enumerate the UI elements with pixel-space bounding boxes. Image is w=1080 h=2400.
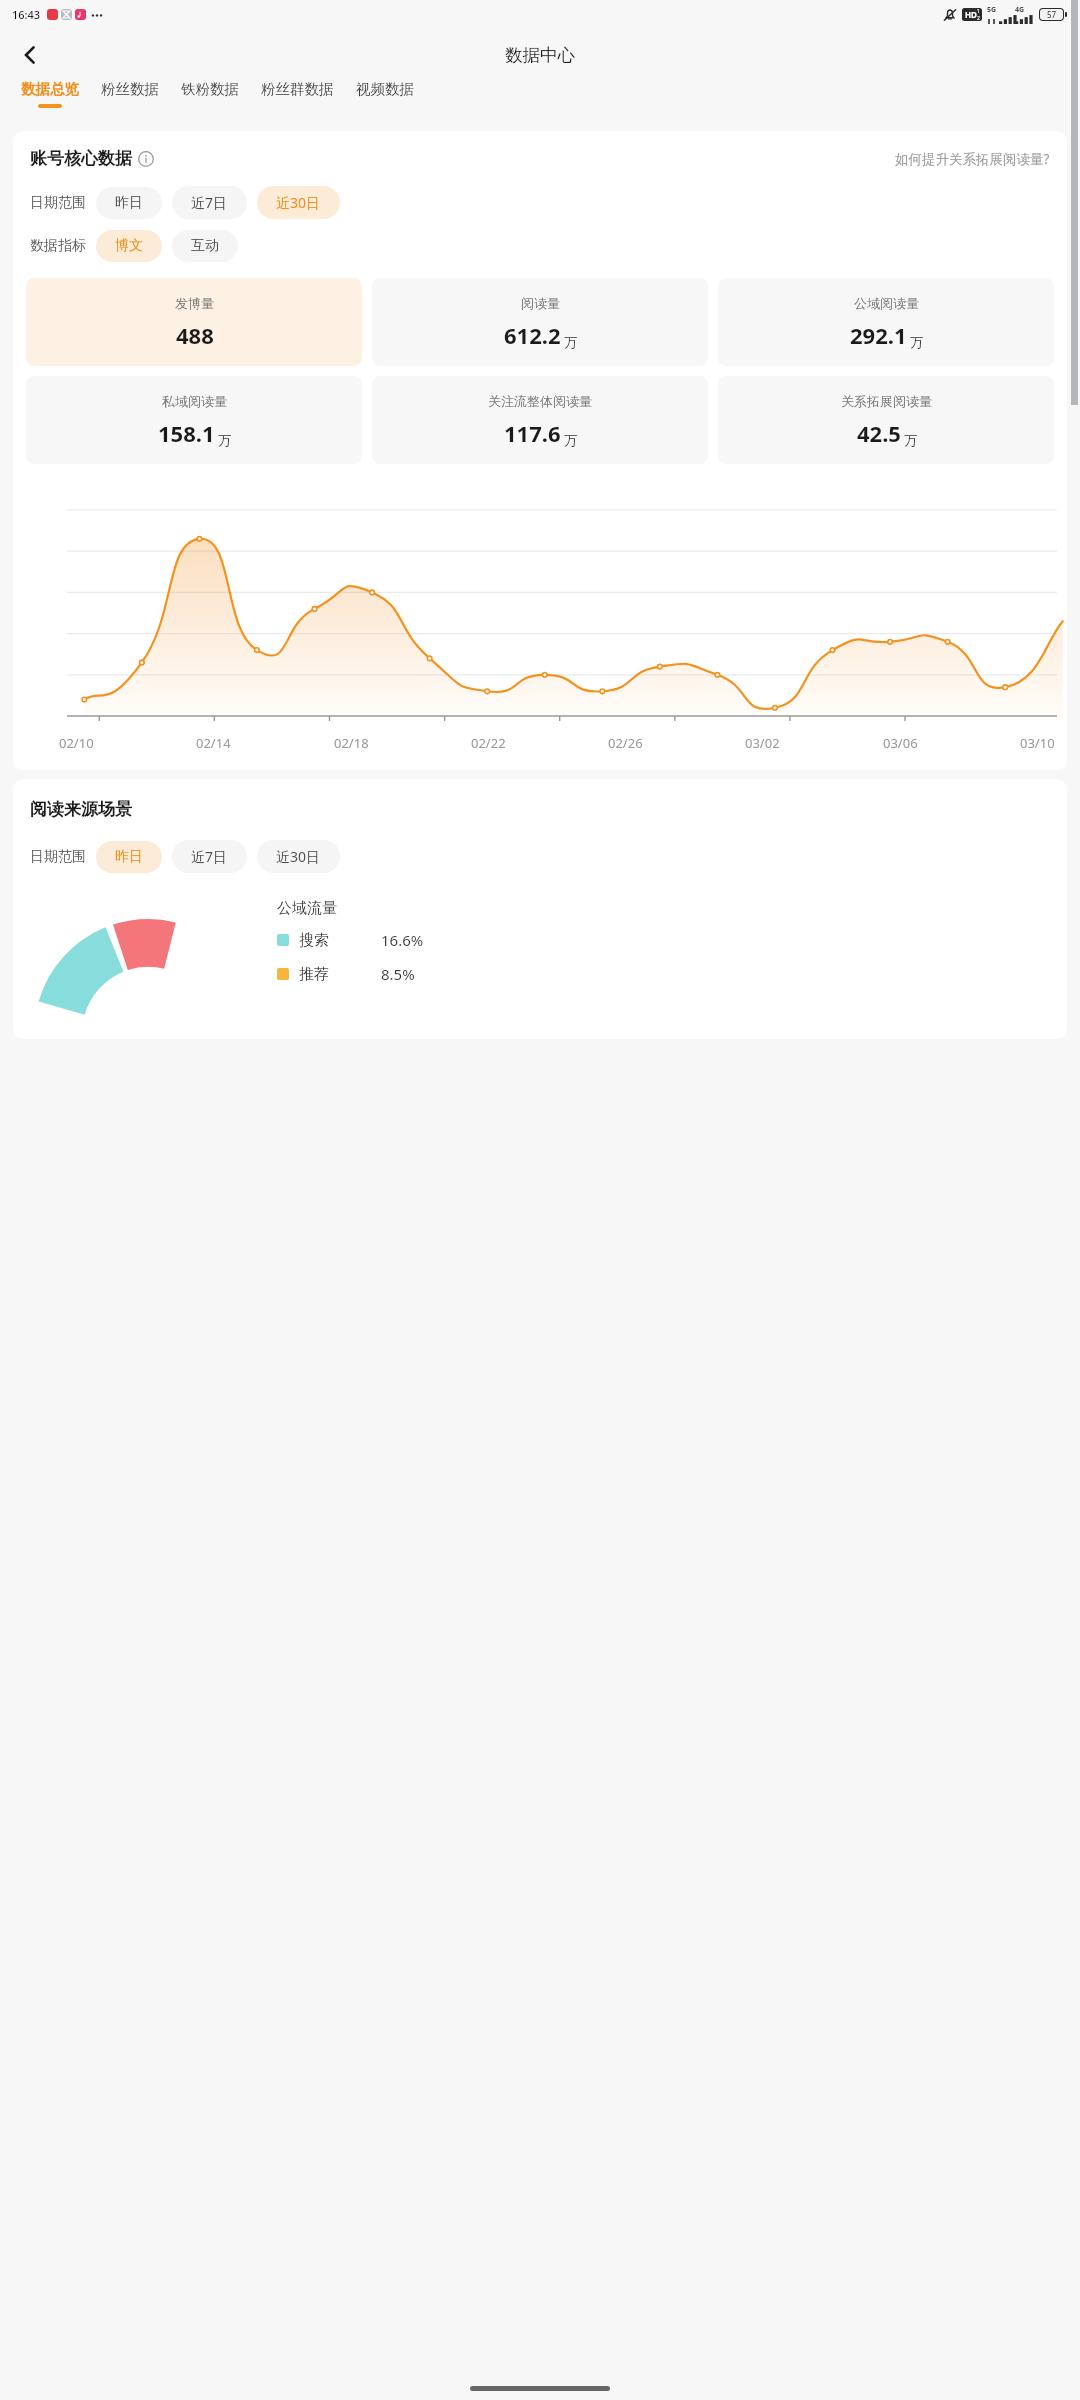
staticText: 公域流量 [277, 899, 337, 918]
staticText: 8.5% [381, 964, 415, 984]
button[interactable]: 私域阅读量 [26, 376, 362, 464]
button[interactable]: 视频数据 [345, 80, 425, 104]
staticText: 292.1 [850, 320, 907, 350]
staticText: 搜索 [299, 931, 329, 950]
staticText: 近30日 [276, 847, 321, 866]
staticText: 488 [176, 320, 214, 350]
staticText: 612.2 [504, 320, 561, 350]
staticText: 日期范围 [30, 848, 86, 866]
staticText: 2 [977, 15, 980, 21]
staticText: 近7日 [191, 193, 228, 212]
staticText: 03/06 [883, 734, 918, 752]
staticText: 互动 [191, 237, 219, 255]
staticText: 日期范围 [30, 194, 86, 212]
staticText: 02/10 [59, 734, 94, 752]
staticText: 万 [564, 334, 577, 350]
staticText: 03/02 [745, 734, 780, 752]
staticText: 铁粉数据 [181, 80, 239, 98]
staticText: 4G [1015, 5, 1025, 15]
button[interactable]: 粉丝群数据 [250, 80, 345, 104]
staticText: 03/10 [1020, 734, 1055, 752]
staticText: 万 [904, 432, 917, 448]
staticText: HD [965, 9, 977, 20]
staticText: 42.5 [857, 418, 901, 448]
button[interactable]: 近7日 [172, 186, 247, 219]
staticText: 1 [977, 8, 980, 15]
staticText: 发博量 [175, 295, 214, 311]
staticText: 私域阅读量 [162, 393, 227, 409]
button[interactable]: 博文 [96, 230, 162, 262]
staticText: 近30日 [276, 193, 321, 212]
staticText: 02/22 [471, 734, 506, 752]
staticText: 02/14 [196, 734, 231, 752]
button[interactable]: 阅读量 [372, 278, 708, 366]
button[interactable]: 数据总览 [10, 80, 90, 108]
staticText: 万 [564, 432, 577, 448]
staticText: 推荐 [299, 965, 329, 984]
button[interactable]: 近30日 [257, 186, 340, 219]
staticText: 近7日 [191, 847, 228, 866]
button[interactable]: 昨日 [96, 187, 162, 219]
button[interactable]: 关系拓展阅读量 [718, 376, 1054, 464]
staticText: 粉丝群数据 [261, 80, 334, 98]
staticText: 5G [987, 5, 997, 15]
staticText: 16.6% [381, 930, 424, 950]
button[interactable]: 昨日 [96, 841, 162, 873]
staticText: 万 [218, 432, 231, 448]
staticText: 如何提升关系拓展阅读量? [895, 150, 1050, 168]
staticText: 公域阅读量 [854, 295, 919, 311]
staticText: 阅读量 [521, 295, 560, 311]
button[interactable]: 近30日 [257, 840, 340, 873]
staticText: 117.6 [504, 418, 561, 448]
staticText: 关系拓展阅读量 [841, 393, 932, 409]
button[interactable]: 粉丝数据 [90, 80, 170, 104]
staticText: 158.1 [158, 418, 215, 448]
button[interactable]: 关注流整体阅读量 [372, 376, 708, 464]
staticText: 02/18 [334, 734, 369, 752]
staticText: 数据总览 [21, 80, 79, 98]
staticText: 万 [910, 334, 923, 350]
staticText: 16:43 [12, 7, 41, 22]
staticText: 关注流整体阅读量 [488, 393, 592, 409]
staticText: 数据指标 [30, 237, 86, 255]
staticText: 昨日 [115, 194, 143, 212]
button[interactable]: Back [8, 33, 52, 77]
button[interactable]: 近7日 [172, 840, 247, 873]
staticText: 02/26 [608, 734, 643, 752]
button[interactable]: 如何提升关系拓展阅读量? [895, 150, 1050, 168]
staticText: 昨日 [115, 848, 143, 866]
button[interactable]: 互动 [172, 230, 238, 262]
button[interactable]: Info [138, 151, 154, 167]
staticText: 账号核心数据 [30, 148, 132, 169]
staticText: 视频数据 [356, 80, 414, 98]
staticText: 57 [1047, 9, 1057, 20]
staticText: 数据中心 [505, 44, 575, 66]
button[interactable]: 公域阅读量 [718, 278, 1054, 366]
button[interactable]: 铁粉数据 [170, 80, 250, 104]
staticText: 阅读来源场景 [30, 799, 132, 820]
staticText: 博文 [115, 237, 143, 255]
staticText: 粉丝数据 [101, 80, 159, 98]
button[interactable]: 发博量 [26, 278, 362, 366]
